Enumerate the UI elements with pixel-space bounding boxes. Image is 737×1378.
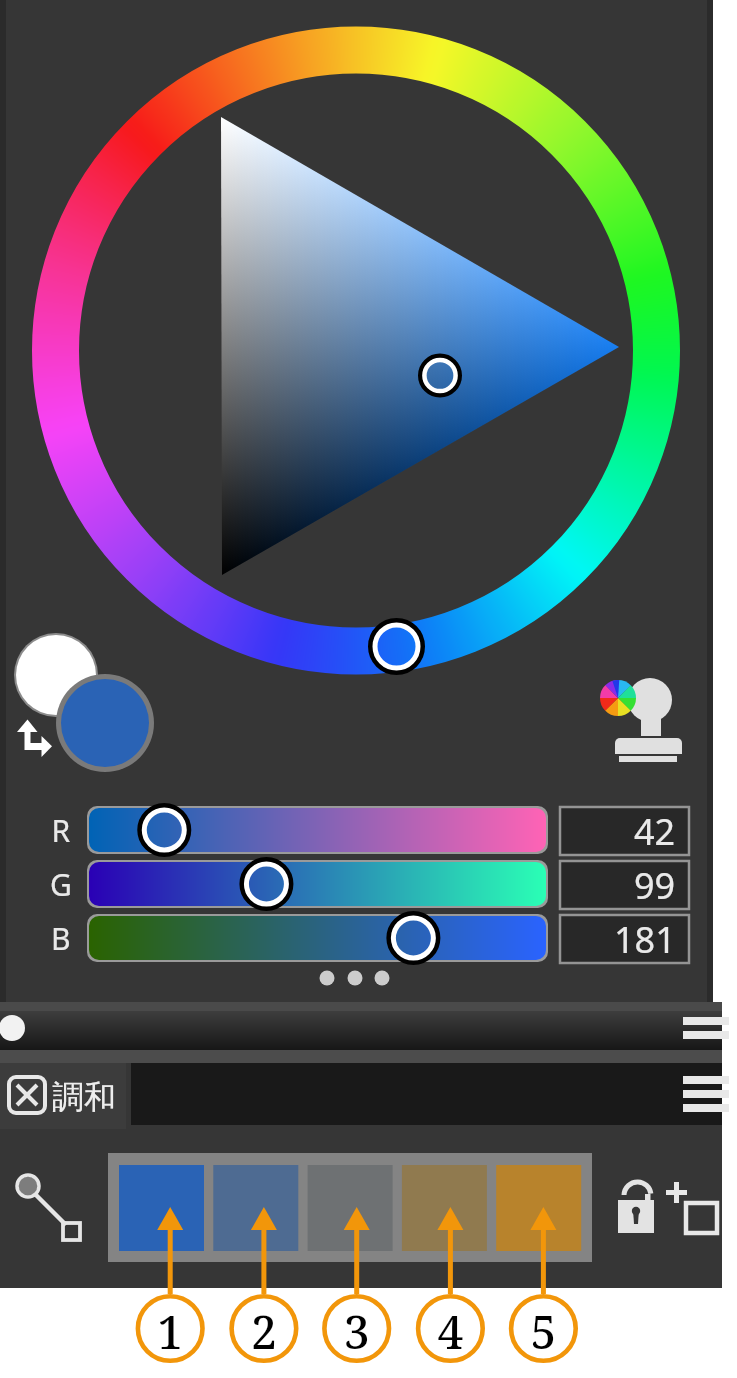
button[interactable]: Colour wheel xyxy=(33,28,677,672)
button[interactable]: Menu xyxy=(678,1011,730,1050)
button[interactable]: Close harmony panel xyxy=(0,1063,126,1129)
button[interactable]: Colour swatch 5 xyxy=(496,1165,581,1252)
button[interactable]: Pick colour xyxy=(8,1163,92,1247)
button[interactable]: Blue value 181 xyxy=(560,915,690,964)
button[interactable]: Green value 99 xyxy=(560,861,690,910)
button[interactable]: Red value 42 xyxy=(560,807,690,856)
button[interactable]: Colour swatch 2 xyxy=(213,1165,298,1252)
button[interactable]: Colour swatch 3 xyxy=(308,1165,393,1252)
button[interactable]: Add colour xyxy=(664,1178,722,1238)
button[interactable]: Colour set / stamp xyxy=(596,672,690,768)
button[interactable]: Page indicator xyxy=(312,962,400,994)
button[interactable]: Green slider xyxy=(85,858,551,910)
button[interactable]: Unlock palette xyxy=(612,1178,662,1238)
button[interactable]: Red slider xyxy=(85,804,551,856)
button[interactable]: Colour swatch 4 xyxy=(402,1165,487,1252)
button[interactable]: Harmony menu xyxy=(678,1065,730,1125)
button[interactable]: Colour swatch 1 xyxy=(119,1165,204,1252)
button[interactable]: Swap foreground and background colour xyxy=(14,633,153,773)
button[interactable]: Blue slider xyxy=(85,912,551,964)
